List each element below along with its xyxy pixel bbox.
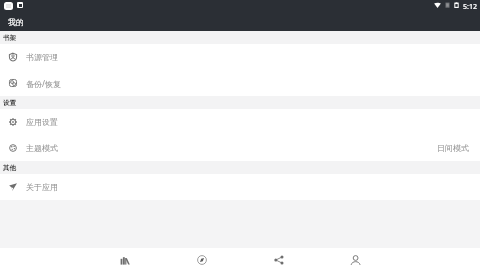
button[interactable]: Profile xyxy=(317,250,394,270)
staticText: 5:12 xyxy=(463,2,477,12)
button[interactable]: 主题模式 xyxy=(0,135,480,161)
staticText: 主题模式 xyxy=(26,143,58,153)
staticText: 应用设置 xyxy=(26,117,58,127)
staticText: 其他 xyxy=(3,164,16,172)
button[interactable]: 应用设置 xyxy=(0,109,480,135)
staticText: 备份/恢复 xyxy=(26,78,61,89)
button[interactable]: Share xyxy=(240,250,317,270)
button[interactable]: 我的 xyxy=(0,12,480,31)
button[interactable]: 备份/恢复 xyxy=(0,70,480,96)
staticText: 关于应用 xyxy=(26,182,58,192)
staticText: 我的 xyxy=(8,17,24,27)
staticText: 设置 xyxy=(3,99,16,107)
button[interactable]: Bookshelf xyxy=(86,250,163,270)
button[interactable]: Explore xyxy=(163,250,240,270)
staticText: 书架 xyxy=(3,34,16,42)
staticText: 书源管理 xyxy=(26,52,58,62)
staticText: 日间模式 xyxy=(437,143,469,153)
button[interactable]: 书源管理 xyxy=(0,44,480,70)
button[interactable]: 关于应用 xyxy=(0,174,480,200)
